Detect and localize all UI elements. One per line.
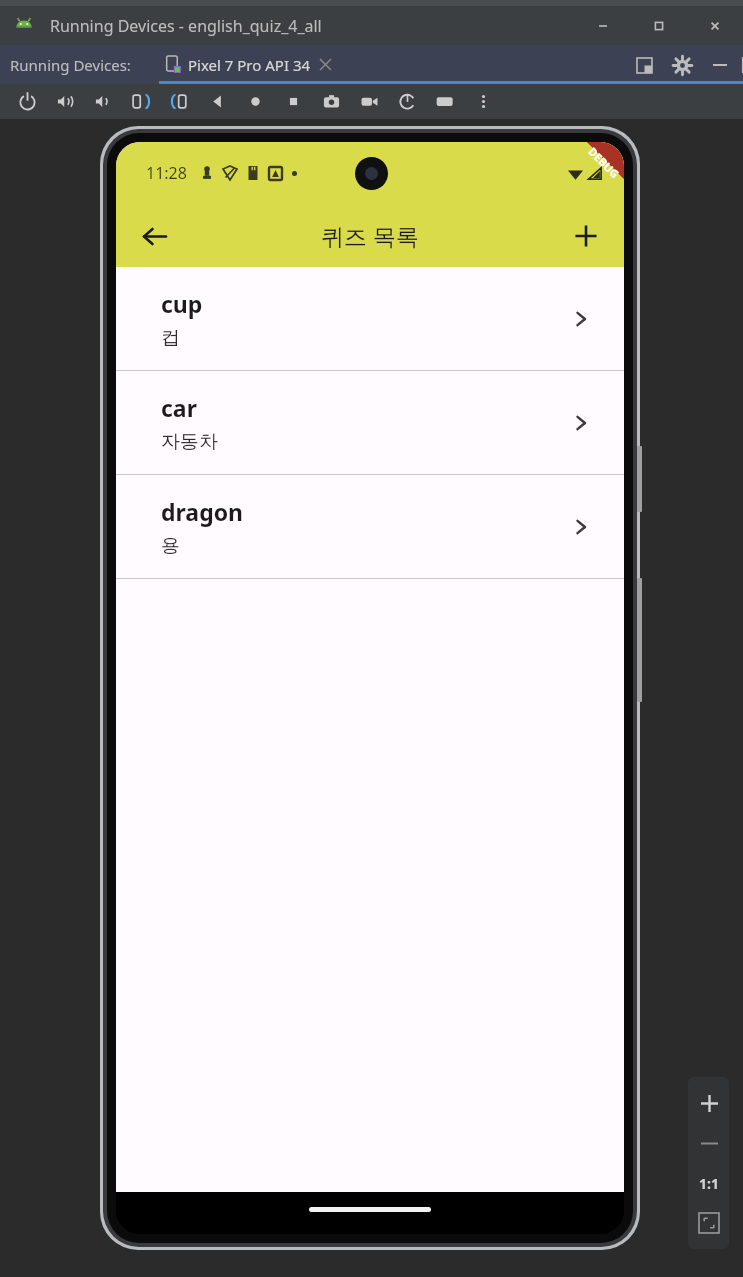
button[interactable]: Screenshot xyxy=(312,84,350,119)
button[interactable]: Volume up xyxy=(46,84,84,119)
button[interactable]: Back xyxy=(198,84,236,119)
button[interactable]: Snapshots xyxy=(388,84,426,119)
button[interactable]: Layout options xyxy=(629,50,659,80)
staticText: Running Devices - english_quiz_4_all xyxy=(50,15,322,37)
button[interactable]: dragon xyxy=(116,475,624,578)
button[interactable]: Close xyxy=(687,6,743,45)
button[interactable]: Add quiz xyxy=(562,212,610,260)
button[interactable]: Overview xyxy=(274,84,312,119)
button[interactable]: Settings xyxy=(667,50,697,80)
button[interactable]: Rotate left xyxy=(122,84,160,119)
staticText: cup xyxy=(161,288,203,319)
staticText: 11:28 xyxy=(146,162,187,184)
button[interactable]: Hide xyxy=(705,50,735,80)
staticText: 퀴즈 목록 xyxy=(321,220,419,251)
button[interactable]: Pixel 7 Pro API 34 xyxy=(159,45,743,84)
staticText: Running Devices: xyxy=(10,55,131,75)
staticText: car xyxy=(161,392,197,423)
button[interactable]: Fit to screen xyxy=(689,1203,729,1243)
button[interactable]: Zoom in xyxy=(689,1083,729,1123)
button[interactable]: Power xyxy=(8,84,46,119)
button[interactable]: Volume down xyxy=(84,84,122,119)
staticText: 자동차 xyxy=(161,430,218,454)
button[interactable]: car xyxy=(116,371,624,474)
button[interactable]: Home xyxy=(236,84,274,119)
staticText: DEBUG xyxy=(585,144,623,181)
button[interactable]: Record screen xyxy=(350,84,388,119)
button[interactable]: Zoom out xyxy=(689,1123,729,1163)
button[interactable]: Minimize xyxy=(575,6,631,45)
staticText: dragon xyxy=(161,496,243,527)
staticText: Pixel 7 Pro API 34 xyxy=(188,55,311,75)
button[interactable]: Rotate right xyxy=(160,84,198,119)
button[interactable]: Actual size xyxy=(689,1163,729,1203)
button[interactable]: Keyboard xyxy=(426,84,464,119)
button[interactable]: Maximize xyxy=(631,6,687,45)
staticText: 1:1 xyxy=(699,1174,719,1193)
staticText: 용 xyxy=(161,534,180,558)
button[interactable]: Back xyxy=(130,212,178,260)
staticText: 컵 xyxy=(161,326,180,350)
button[interactable]: cup xyxy=(116,267,624,370)
button[interactable]: More xyxy=(464,84,502,119)
